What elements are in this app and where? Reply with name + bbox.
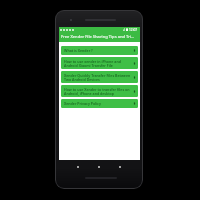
staticText: How to use Xender to transfer files on A… bbox=[64, 87, 130, 96]
staticText: 12:07 bbox=[129, 28, 138, 32]
staticText: How to use xender in iPhone and Android … bbox=[64, 59, 121, 68]
staticText: Xender Quickly Transfer Files Between Tw… bbox=[64, 73, 131, 82]
staticText: Xender Privacy Policy bbox=[64, 101, 101, 106]
button[interactable]: What is Xender ? bbox=[61, 46, 138, 55]
button[interactable]: How to use Xender to transfer files on A… bbox=[61, 85, 138, 97]
staticText: What is Xender ? bbox=[64, 48, 93, 53]
button[interactable]: How to use xender in iPhone and Android … bbox=[61, 57, 138, 69]
button[interactable]: Xender Privacy Policy bbox=[61, 99, 138, 108]
other: Open bbox=[133, 49, 136, 52]
other: Open bbox=[133, 102, 136, 105]
button[interactable]: Xender Quickly Transfer Files Between Tw… bbox=[61, 71, 138, 83]
other: Open bbox=[133, 90, 136, 93]
other: Open bbox=[133, 62, 136, 65]
other: Open bbox=[133, 76, 136, 79]
staticText: Free Xender File Sharing Tips and Tri... bbox=[61, 34, 135, 40]
